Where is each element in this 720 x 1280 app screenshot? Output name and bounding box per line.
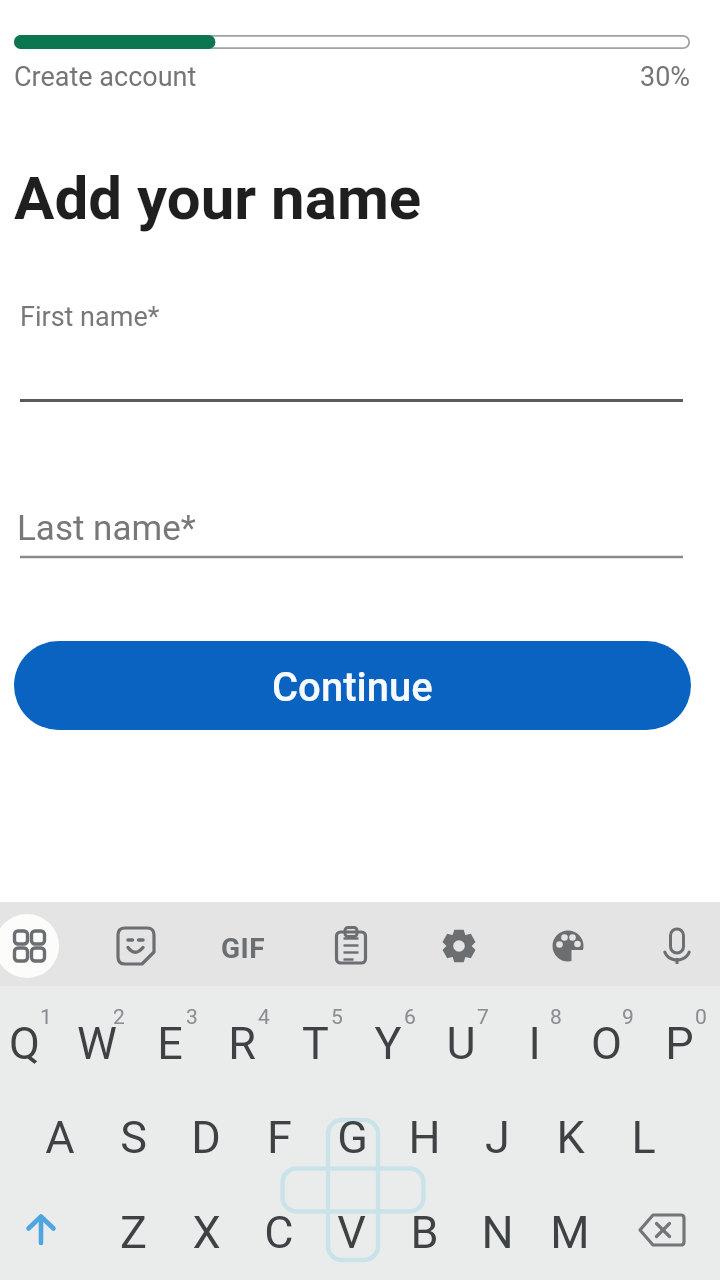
button[interactable]: I [498, 999, 570, 1087]
button[interactable]: First name* [14, 285, 689, 403]
staticText: 2 [113, 1005, 125, 1030]
staticText: W [77, 1017, 117, 1070]
button[interactable]: F [243, 1093, 315, 1181]
staticText: 7 [477, 1005, 489, 1030]
staticText: 30% [640, 61, 691, 93]
staticText: L [631, 1111, 656, 1164]
staticText: O [591, 1017, 622, 1070]
button[interactable]: M [534, 1188, 606, 1276]
button[interactable]: L [607, 1093, 679, 1181]
button[interactable]: Stickers [96, 906, 176, 986]
button[interactable]: R [206, 999, 278, 1087]
button[interactable]: Y [352, 999, 424, 1087]
button[interactable]: Q [0, 999, 60, 1087]
staticText: Y [374, 1017, 402, 1070]
staticText: Z [120, 1206, 147, 1259]
staticText: Q [9, 1017, 40, 1070]
staticText: M [550, 1206, 590, 1259]
button[interactable]: K [534, 1093, 606, 1181]
button[interactable]: Voice input [637, 906, 717, 986]
staticText: Add your name [14, 163, 422, 233]
staticText: 8 [550, 1005, 562, 1030]
button[interactable]: Clipboard [311, 906, 391, 986]
staticText: B [410, 1206, 439, 1259]
button[interactable]: Last name* [14, 492, 689, 560]
button[interactable]: Theme [528, 906, 608, 986]
button[interactable]: N [461, 1188, 533, 1276]
button[interactable]: X [170, 1188, 242, 1276]
staticText: I [528, 1017, 541, 1070]
button[interactable]: GIF [203, 906, 283, 986]
staticText: Create account [14, 61, 197, 93]
staticText: S [120, 1111, 147, 1164]
staticText: C [264, 1206, 294, 1259]
staticText: 5 [331, 1005, 343, 1030]
staticText: Continue [272, 664, 433, 711]
staticText: 3 [186, 1005, 198, 1030]
button[interactable]: C [243, 1188, 315, 1276]
staticText: GIF [221, 932, 266, 965]
staticText: First name* [20, 301, 160, 333]
button[interactable]: J [461, 1093, 533, 1181]
button[interactable]: T [279, 999, 351, 1087]
button[interactable]: V [315, 1188, 387, 1276]
staticText: E [157, 1017, 183, 1070]
button[interactable]: D [170, 1093, 242, 1181]
staticText: F [267, 1111, 292, 1164]
staticText: D [191, 1111, 221, 1164]
button[interactable]: A [24, 1093, 96, 1181]
staticText: P [665, 1017, 694, 1070]
staticText: 1 [40, 1005, 52, 1030]
staticText: N [481, 1206, 514, 1259]
staticText: R [228, 1017, 256, 1070]
staticText: 4 [258, 1005, 270, 1030]
button[interactable]: G [316, 1093, 388, 1181]
button[interactable]: Backspace [626, 1190, 698, 1274]
button[interactable]: Z [97, 1188, 169, 1276]
staticText: Last name* [17, 508, 196, 549]
staticText: V [337, 1206, 366, 1259]
staticText: 0 [695, 1005, 707, 1030]
button[interactable]: W [61, 999, 133, 1087]
button[interactable]: Apps [0, 906, 70, 986]
staticText: J [485, 1111, 510, 1164]
staticText: 9 [622, 1005, 634, 1030]
staticText: X [192, 1206, 221, 1259]
staticText: H [408, 1111, 441, 1164]
staticText: K [556, 1111, 585, 1164]
button[interactable]: B [388, 1188, 460, 1276]
button[interactable]: Settings [419, 906, 499, 986]
button[interactable]: S [97, 1093, 169, 1181]
button[interactable]: Continue [14, 641, 691, 730]
staticText: T [302, 1017, 329, 1070]
button[interactable]: E [134, 999, 206, 1087]
staticText: U [446, 1017, 476, 1070]
staticText: 6 [404, 1005, 416, 1030]
button[interactable]: O [570, 999, 642, 1087]
button[interactable]: U [425, 999, 497, 1087]
button[interactable]: H [388, 1093, 460, 1181]
staticText: G [337, 1111, 368, 1164]
button[interactable]: P [643, 999, 715, 1087]
button[interactable]: Shift [6, 1190, 78, 1274]
staticText: A [45, 1111, 75, 1164]
